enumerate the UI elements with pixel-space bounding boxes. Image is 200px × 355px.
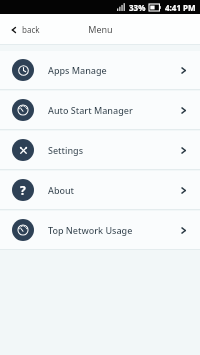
- staticText: Apps Manage: [48, 64, 107, 76]
- staticText: 4:41 PM: [165, 2, 196, 13]
- button[interactable]: Apps Manage: [0, 51, 200, 89]
- staticText: 33%: [129, 2, 146, 13]
- staticText: Settings: [48, 144, 84, 156]
- button[interactable]: Top Network Usage: [0, 211, 200, 249]
- staticText: Auto Start Manager: [48, 104, 133, 116]
- button[interactable]: Settings: [0, 131, 200, 169]
- button[interactable]: Auto Start Manager: [0, 91, 200, 129]
- staticText: Menu: [88, 23, 113, 35]
- staticText: About: [48, 184, 75, 196]
- staticText: ?: [20, 182, 26, 198]
- button[interactable]: back: [6, 20, 44, 39]
- button[interactable]: ?: [0, 171, 200, 209]
- staticText: back: [22, 24, 40, 35]
- staticText: Top Network Usage: [48, 224, 133, 236]
